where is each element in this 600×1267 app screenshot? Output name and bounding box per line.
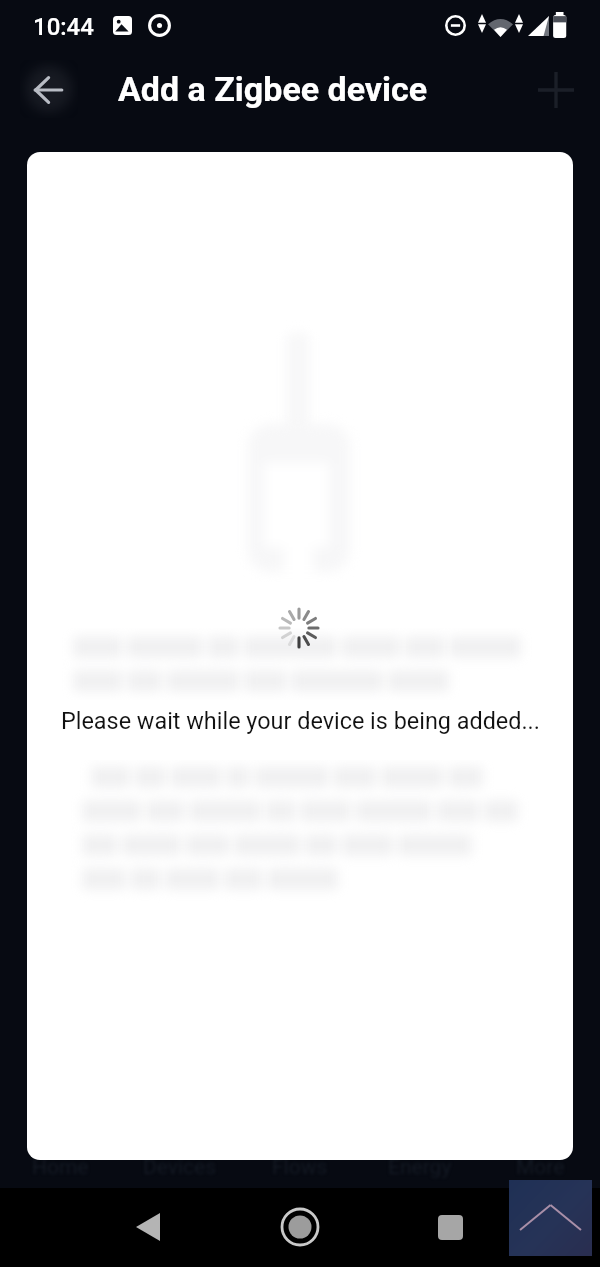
button[interactable]: Expand	[509, 1180, 592, 1256]
button[interactable]: Recents	[425, 1202, 475, 1252]
staticText: Add a Zigbee device	[118, 69, 428, 109]
button[interactable]: Back	[123, 1202, 173, 1252]
staticText: Home	[32, 1155, 89, 1180]
button[interactable]: Home	[275, 1202, 325, 1252]
button[interactable]: Home	[0, 1142, 120, 1192]
staticText: Flows	[272, 1155, 328, 1180]
button[interactable]: Flows	[240, 1142, 360, 1192]
button[interactable]: Devices	[120, 1142, 240, 1192]
staticText: Energy	[388, 1155, 452, 1180]
button[interactable]: Energy	[360, 1142, 480, 1192]
staticText: 10:44	[33, 13, 94, 41]
button[interactable]: More	[480, 1142, 600, 1192]
staticText: Devices	[143, 1155, 217, 1180]
button[interactable]: Back	[22, 64, 74, 116]
staticText: More	[516, 1155, 565, 1180]
button[interactable]: Add	[530, 64, 582, 116]
staticText: Please wait while your device is being a…	[61, 707, 540, 734]
